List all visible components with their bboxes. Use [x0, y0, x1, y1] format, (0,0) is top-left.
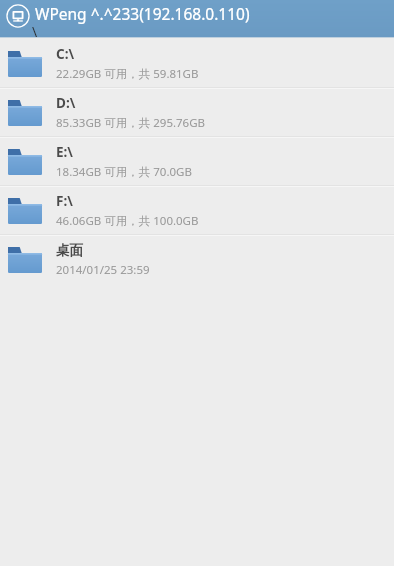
button[interactable]: E:\ [0, 138, 394, 185]
staticText: \ [32, 22, 38, 41]
staticText: 46.06GB 可用，共 100.0GB [56, 213, 199, 229]
staticText: 85.33GB 可用，共 295.76GB [56, 115, 206, 131]
staticText: E:\ [56, 143, 73, 161]
button[interactable]: D:\ [0, 89, 394, 136]
staticText: 桌面 [56, 242, 83, 259]
staticText: D:\ [56, 94, 76, 112]
button[interactable]: 桌面 [0, 236, 394, 283]
button[interactable]: F:\ [0, 187, 394, 234]
staticText: C:\ [56, 45, 75, 63]
button[interactable]: Device [5, 3, 31, 29]
staticText: 18.34GB 可用，共 70.0GB [56, 164, 192, 180]
staticText: 22.29GB 可用，共 59.81GB [56, 66, 199, 82]
staticText: 2014/01/25 23:59 [56, 262, 150, 278]
staticText: F:\ [56, 192, 73, 210]
staticText: WPeng ^.^233(192.168.0.110) [35, 3, 250, 24]
button[interactable]: C:\ [0, 40, 394, 87]
